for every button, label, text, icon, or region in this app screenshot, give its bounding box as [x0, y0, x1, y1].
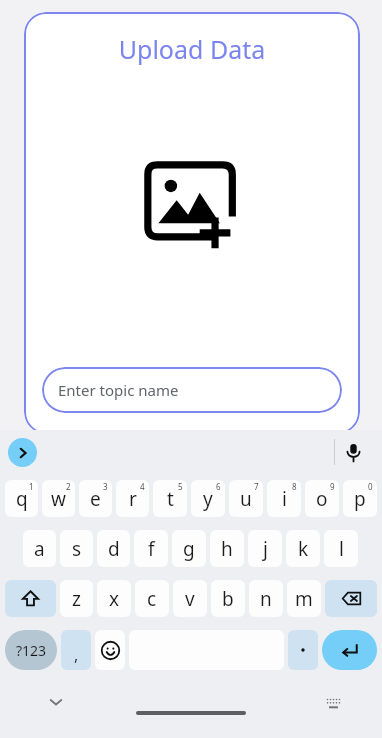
button[interactable]: z — [60, 580, 93, 617]
staticText: e — [90, 486, 101, 512]
button[interactable]: w — [42, 480, 75, 517]
staticText: 2 — [66, 481, 71, 492]
staticText: g — [183, 536, 195, 562]
staticText: i — [282, 486, 287, 512]
button[interactable]: p — [343, 480, 377, 517]
staticText: Upload Data — [24, 32, 360, 66]
button[interactable]: q — [5, 480, 38, 517]
button[interactable]: c — [135, 580, 169, 617]
staticText: , — [74, 644, 79, 666]
staticText: f — [148, 536, 155, 562]
staticText: ?123 — [16, 641, 47, 660]
button[interactable]: Backspace — [325, 580, 377, 617]
button[interactable]: Change keyboard — [320, 689, 346, 715]
staticText: 5 — [178, 481, 183, 492]
button[interactable]: i — [267, 480, 301, 517]
staticText: b — [222, 586, 234, 612]
staticText: 4 — [140, 481, 145, 492]
button[interactable]: n — [249, 580, 283, 617]
staticText: w — [51, 486, 66, 512]
staticText: j — [263, 536, 268, 562]
staticText: 9 — [330, 481, 335, 492]
staticText: o — [316, 486, 328, 512]
staticText: m — [295, 586, 313, 612]
button[interactable]: r — [116, 480, 149, 517]
button[interactable]: b — [211, 580, 245, 617]
button[interactable]: ?123 — [5, 630, 57, 670]
staticText: q — [16, 486, 28, 512]
staticText: u — [240, 486, 252, 512]
button[interactable]: t — [153, 480, 187, 517]
staticText: 6 — [216, 481, 221, 492]
button[interactable]: Enter topic name — [42, 367, 342, 413]
button[interactable]: m — [287, 580, 321, 617]
button[interactable]: u — [229, 480, 263, 517]
staticText: s — [72, 536, 82, 562]
staticText: a — [34, 536, 45, 562]
button[interactable]: Shift — [5, 580, 56, 617]
button[interactable]: Emoji — [95, 630, 125, 670]
staticText: r — [129, 486, 137, 512]
staticText: 7 — [254, 481, 259, 492]
staticText: c — [147, 586, 157, 612]
staticText: x — [109, 586, 120, 612]
button[interactable] — [288, 630, 318, 670]
staticText: Enter topic name — [58, 380, 179, 400]
button[interactable]: e — [79, 480, 112, 517]
button[interactable]: Hide keyboard — [42, 688, 70, 716]
button[interactable]: y — [191, 480, 225, 517]
staticText: z — [72, 586, 81, 612]
button[interactable]: Add image — [144, 160, 240, 256]
staticText: 0 — [368, 481, 373, 492]
button[interactable]: Enter — [322, 630, 377, 670]
button[interactable]: f — [134, 530, 168, 567]
staticText: h — [221, 536, 233, 562]
button[interactable]: k — [286, 530, 320, 567]
button[interactable]: h — [210, 530, 244, 567]
staticText: 8 — [292, 481, 297, 492]
button[interactable]: Expand suggestions — [8, 438, 37, 467]
button[interactable]: Voice input — [338, 437, 368, 467]
button[interactable]: , — [61, 630, 91, 670]
button[interactable]: s — [60, 530, 93, 567]
button[interactable]: x — [97, 580, 131, 617]
staticText: 3 — [103, 481, 108, 492]
staticText: k — [298, 536, 309, 562]
button[interactable]: g — [172, 530, 206, 567]
button[interactable]: j — [248, 530, 282, 567]
staticText: y — [203, 486, 213, 512]
button[interactable]: d — [97, 530, 130, 567]
button[interactable]: v — [173, 580, 207, 617]
button[interactable]: l — [324, 530, 358, 567]
staticText: v — [185, 586, 195, 612]
staticText: t — [167, 486, 174, 512]
staticText: n — [260, 586, 272, 612]
staticText: 1 — [29, 481, 34, 492]
staticText: d — [108, 536, 120, 562]
staticText: p — [354, 486, 366, 512]
button[interactable]: a — [23, 530, 56, 567]
staticText: l — [339, 536, 344, 562]
button[interactable]: o — [305, 480, 339, 517]
